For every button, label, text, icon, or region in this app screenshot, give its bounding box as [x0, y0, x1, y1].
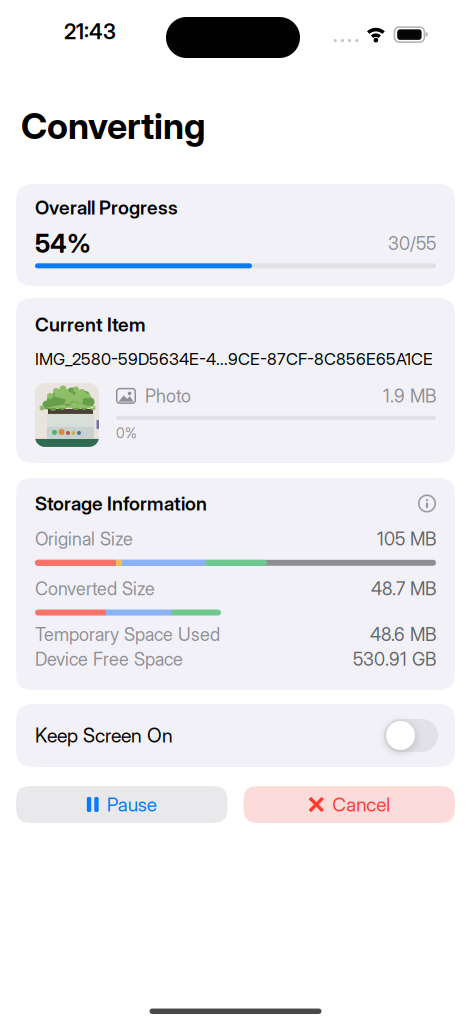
staticText: 1.9 MB: [383, 385, 436, 407]
staticText: 105 MB: [377, 528, 436, 550]
staticText: Pause: [107, 793, 157, 816]
button[interactable]: Cancel: [243, 786, 455, 823]
staticText: Device Free Space: [35, 648, 183, 670]
staticText: Converting: [21, 104, 206, 148]
staticText: Converted Size: [35, 578, 155, 600]
button[interactable]: Keep Screen On: [16, 704, 455, 767]
staticText: 54%: [35, 228, 91, 259]
button[interactable]: Pause: [16, 786, 227, 823]
staticText: Keep Screen On: [35, 724, 173, 747]
staticText: 530.91 GB: [353, 648, 436, 670]
staticText: Photo: [145, 385, 191, 407]
button[interactable]: Storage info: [418, 494, 436, 512]
staticText: IMG_2580-59D5634E-4...9CE-87CF-8C856E65A…: [35, 349, 433, 369]
staticText: Current Item: [35, 313, 146, 336]
staticText: 21:43: [64, 19, 116, 44]
staticText: Original Size: [35, 528, 133, 550]
staticText: Cancel: [332, 793, 390, 816]
staticText: Temporary Space Used: [35, 623, 220, 645]
staticText: Overall Progress: [35, 196, 178, 219]
staticText: 48.6 MB: [370, 623, 436, 645]
staticText: 30/55: [388, 232, 436, 254]
staticText: Storage Information: [35, 492, 207, 515]
staticText: 0%: [116, 425, 137, 442]
staticText: 48.7 MB: [371, 578, 436, 600]
